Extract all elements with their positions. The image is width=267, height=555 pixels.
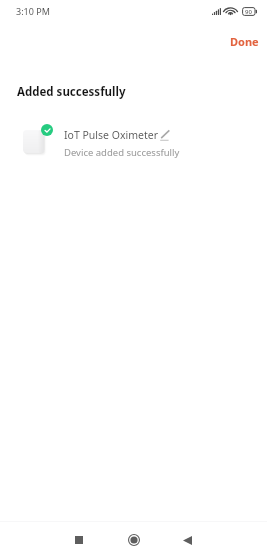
staticText: 3:10 PM (16, 5, 50, 17)
staticText: Done (230, 34, 259, 49)
button[interactable]: Recent apps (56, 526, 101, 554)
button[interactable]: Home (111, 526, 156, 554)
button[interactable]: Done (222, 29, 267, 54)
button[interactable]: Rename device (158, 128, 172, 142)
button[interactable]: IoT Pulse Oximeter (0, 118, 267, 164)
staticText: IoT Pulse Oximeter (64, 128, 158, 142)
button[interactable]: Back (165, 526, 210, 554)
staticText: 90 (245, 8, 252, 16)
staticText: Device added successfully (64, 146, 180, 159)
staticText: Added successfully (17, 84, 126, 100)
